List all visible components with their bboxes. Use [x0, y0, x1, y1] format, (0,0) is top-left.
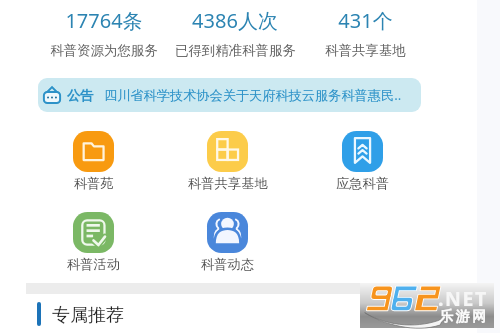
staticText: 科普活动: [67, 256, 121, 273]
button[interactable]: 431个: [300, 7, 430, 59]
staticText: 17764条: [65, 7, 143, 34]
button[interactable]: 17764条: [39, 7, 169, 59]
button[interactable]: 4386人次: [170, 7, 300, 59]
staticText: 乐游网: [439, 308, 489, 326]
button[interactable]: 公告: [38, 78, 421, 112]
staticText: 431个: [338, 7, 393, 34]
staticText: 科普共享基地: [188, 175, 268, 192]
staticText: 公告: [67, 87, 94, 104]
staticText: 四川省科学技术协会关于天府科技云服务科普惠民..: [104, 86, 402, 104]
staticText: 科普共享基地: [325, 42, 406, 59]
button[interactable]: 科普共享基地: [177, 131, 278, 192]
staticText: 科普动态: [201, 256, 255, 273]
staticText: 专属推荐: [52, 304, 124, 327]
button[interactable]: 科普苑: [43, 131, 144, 192]
staticText: 已得到精准科普服务: [175, 42, 296, 59]
staticText: 4386人次: [192, 7, 278, 34]
button[interactable]: 应急科普: [312, 131, 413, 192]
staticText: .NET: [438, 285, 488, 312]
staticText: 科普苑: [74, 175, 114, 192]
staticText: 应急科普: [336, 175, 390, 192]
button[interactable]: 科普活动: [43, 212, 144, 273]
button[interactable]: 科普动态: [177, 212, 278, 273]
staticText: 科普资源为您服务: [50, 42, 158, 59]
